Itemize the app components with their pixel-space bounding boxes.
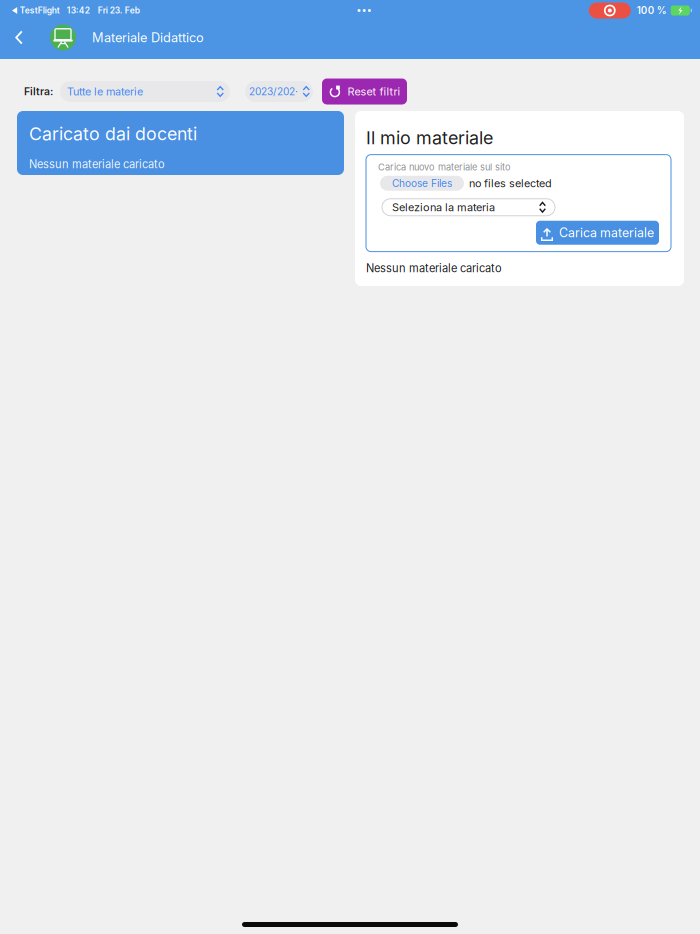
staticText: Nessun materiale caricato (29, 157, 165, 171)
staticText: Choose Files (392, 177, 452, 189)
button[interactable]: Choose Files (380, 176, 464, 191)
staticText: Carica materiale (559, 225, 654, 240)
staticText: Materiale Didattico (92, 30, 204, 45)
staticText: no files selected (469, 177, 552, 190)
staticText: Fri 23. Feb (98, 5, 140, 16)
staticText: 13:42 (67, 5, 90, 16)
staticText: Carica nuovo materiale sul sito (378, 162, 511, 173)
staticText: Nessun materiale caricato (366, 262, 502, 275)
button[interactable]: 2023/202· (245, 81, 313, 102)
staticText: 2023/202· (249, 85, 298, 98)
button[interactable]: Tutte le materie (60, 81, 230, 102)
button[interactable]: Carica materiale (536, 221, 659, 245)
button[interactable]: Back (5, 22, 33, 52)
staticText: TestFlight (20, 5, 60, 16)
staticText: Caricato dai docenti (29, 123, 197, 144)
staticText: Seleziona la materia (392, 201, 495, 214)
staticText: Tutte le materie (67, 85, 143, 98)
staticText: Filtra: (24, 85, 53, 98)
staticText: 100 % (637, 4, 667, 16)
staticText: Reset filtri (347, 85, 400, 98)
button[interactable]: Seleziona la materia (382, 199, 555, 216)
button[interactable]: Reset filtri (322, 78, 407, 104)
staticText: Il mio materiale (366, 127, 493, 149)
